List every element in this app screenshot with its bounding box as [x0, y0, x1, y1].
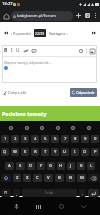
- button[interactable]: I: [11, 47, 13, 54]
- button[interactable]: R: [31, 148, 39, 156]
- button[interactable]: Keyboard tool 6: [85, 124, 93, 132]
- button[interactable]: Backspace: [88, 174, 99, 182]
- staticText: Napisz swoją odpowiedź...: [4, 60, 52, 65]
- button[interactable]: Home: [1, 11, 11, 21]
- staticText: T: [44, 149, 47, 155]
- button[interactable]: E: [21, 148, 29, 156]
- button[interactable]: J: [67, 162, 75, 170]
- button[interactable]: I: [71, 148, 79, 156]
- staticText: G: [49, 163, 53, 169]
- button[interactable]: C: [33, 174, 42, 182]
- button[interactable]: V: [44, 174, 53, 182]
- staticText: I: [74, 149, 76, 155]
- button[interactable]: Keyboard tool 2: [23, 124, 31, 132]
- button[interactable]: Assistant: [11, 201, 22, 212]
- staticText: babyboom.pl/forum: [17, 13, 56, 19]
- button[interactable]: Q: [1, 148, 9, 156]
- button[interactable]: Podobne tematy: [0, 106, 100, 121]
- button[interactable]: U: [16, 47, 20, 54]
- button[interactable]: babyboom.pl/forum: [11, 11, 73, 21]
- button[interactable]: ‹ Poprzedni: [11, 31, 31, 36]
- button[interactable]: Quote: [31, 48, 37, 54]
- button[interactable]: Recent apps: [33, 201, 44, 212]
- button[interactable]: 4: [31, 135, 39, 143]
- staticText: Q: [3, 149, 7, 155]
- button[interactable]: L: [87, 162, 95, 170]
- button[interactable]: Keyboard tool 3: [38, 124, 46, 132]
- button[interactable]: N: [66, 174, 75, 182]
- button[interactable]: Z: [13, 174, 21, 182]
- button[interactable]: W: [11, 148, 19, 156]
- button[interactable]: 3: [21, 135, 29, 143]
- button[interactable]: F: [37, 162, 45, 170]
- button[interactable]: A: [5, 162, 14, 170]
- button[interactable]: Keyboard tool 1: [7, 124, 15, 132]
- button[interactable]: Insert link: [23, 48, 29, 54]
- button[interactable]: Last page: [89, 28, 99, 38]
- button[interactable]: S: [16, 162, 25, 170]
- button[interactable]: ,: [13, 189, 20, 197]
- button[interactable]: K: [77, 162, 85, 170]
- button[interactable]: Shift: [1, 174, 11, 182]
- button[interactable]: Tabs: [83, 11, 92, 20]
- button[interactable]: Polski: [22, 189, 77, 197]
- staticText: L: [90, 163, 93, 169]
- button[interactable]: 9: [81, 135, 89, 143]
- button[interactable]: 7: [61, 135, 69, 143]
- staticText: Podobne tematy: [2, 110, 47, 117]
- staticText: .: [82, 191, 84, 196]
- button[interactable]: 22/39: [34, 29, 46, 37]
- button[interactable]: First page: [1, 28, 11, 38]
- button[interactable]: Enter: [88, 189, 99, 197]
- button[interactable]: More options: [92, 12, 99, 19]
- button[interactable]: U: [61, 148, 69, 156]
- button[interactable]: O: [81, 148, 89, 156]
- button[interactable]: D: [27, 162, 35, 170]
- staticText: R: [34, 149, 37, 155]
- button[interactable]: Insert image: [89, 48, 95, 54]
- staticText: M: [80, 175, 84, 181]
- button[interactable]: Back: [78, 201, 89, 212]
- button[interactable]: T: [41, 148, 49, 156]
- button[interactable]: Dołącz plik: [2, 89, 28, 96]
- staticText: 9: [84, 136, 87, 142]
- button[interactable]: 8: [71, 135, 79, 143]
- button[interactable]: 2: [11, 135, 19, 143]
- button[interactable]: B: [4, 47, 8, 54]
- button[interactable]: Keyboard tool 4: [54, 124, 62, 132]
- button[interactable]: P: [91, 148, 99, 156]
- button[interactable]: Emoji: [78, 48, 84, 54]
- button[interactable]: 5: [41, 135, 49, 143]
- button[interactable]: Keyboard tool 5: [69, 124, 77, 132]
- button[interactable]: Następne ›: [49, 31, 68, 36]
- button[interactable]: Home: [56, 201, 67, 212]
- button[interactable]: .: [79, 189, 86, 197]
- button[interactable]: Odpowiedz: [70, 88, 97, 97]
- staticText: Odpowiedz: [76, 90, 95, 95]
- staticText: 3: [24, 136, 27, 142]
- button[interactable]: 0: [91, 135, 99, 143]
- staticText: P: [94, 149, 97, 155]
- button[interactable]: X: [23, 174, 31, 182]
- button[interactable]: New tab: [74, 11, 83, 20]
- staticText: 22/39: [35, 31, 45, 36]
- button[interactable]: ?1: [1, 189, 11, 197]
- staticText: 4: [34, 136, 37, 142]
- button[interactable]: B: [55, 174, 64, 182]
- button[interactable]: 1: [1, 135, 9, 143]
- staticText: K: [80, 163, 83, 169]
- button[interactable]: G: [47, 162, 55, 170]
- staticText: F: [40, 163, 43, 169]
- button[interactable]: H: [57, 162, 65, 170]
- staticText: Dołącz plik: [8, 90, 27, 95]
- staticText: Z: [16, 175, 19, 181]
- staticText: O: [83, 149, 87, 155]
- staticText: 7: [64, 136, 67, 142]
- staticText: Polski: [45, 191, 54, 195]
- button[interactable]: 6: [51, 135, 59, 143]
- button[interactable]: Y: [51, 148, 59, 156]
- button[interactable]: M: [77, 174, 86, 182]
- staticText: 2: [87, 14, 89, 18]
- staticText: ?1: [4, 191, 8, 195]
- staticText: 1: [4, 136, 7, 142]
